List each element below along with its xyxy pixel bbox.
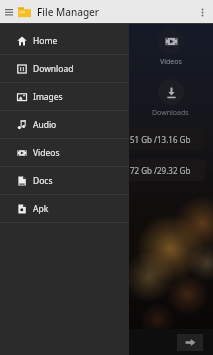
staticText: Downloads	[152, 108, 189, 118]
button[interactable]: Videos	[0, 139, 129, 166]
button[interactable]: Downloads	[158, 79, 184, 105]
staticText: Audio	[33, 119, 57, 131]
button[interactable]: More options	[194, 4, 210, 20]
button[interactable]: Videos	[158, 28, 184, 54]
staticText: Docs	[33, 175, 53, 187]
button[interactable]: Docs	[0, 167, 129, 194]
staticText: Images	[33, 91, 63, 103]
button[interactable]: Images	[0, 83, 129, 110]
staticText: 72 Gb /29.32 Gb	[130, 165, 191, 176]
staticText: Home	[33, 35, 58, 47]
button[interactable]: Download	[0, 55, 129, 82]
button[interactable]: 72 Gb /29.32 Gb	[8, 159, 205, 181]
staticText: Videos	[160, 57, 182, 67]
staticText: File Manager	[37, 5, 100, 19]
button[interactable]: Open navigation drawer	[3, 6, 15, 18]
staticText: Apk	[33, 203, 49, 215]
staticText: Videos	[33, 147, 60, 159]
staticText: 51 Gb /13.16 Gb	[130, 134, 191, 145]
button[interactable]: 51 Gb /13.16 Gb	[8, 128, 205, 150]
button[interactable]: Next	[177, 334, 203, 351]
button[interactable]: Audio	[0, 111, 129, 138]
button[interactable]: Apk	[0, 195, 129, 222]
staticText: Download	[33, 63, 74, 75]
button: Home	[0, 0, 129, 355]
button[interactable]: Home	[0, 27, 129, 54]
